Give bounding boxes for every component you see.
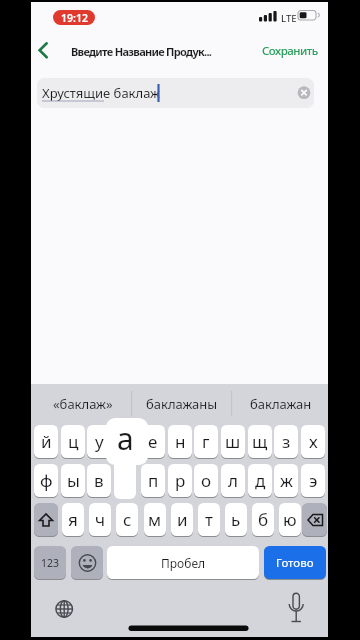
button[interactable]: «баклаж» bbox=[48, 391, 118, 416]
staticText: с bbox=[123, 508, 132, 531]
button[interactable]: в bbox=[87, 464, 111, 497]
staticText: р bbox=[175, 469, 186, 492]
staticText: и bbox=[177, 508, 188, 531]
button[interactable]: я bbox=[62, 503, 84, 536]
button[interactable]: ю bbox=[279, 503, 301, 536]
button[interactable]: с bbox=[116, 503, 138, 536]
button[interactable]: ш bbox=[221, 425, 245, 458]
staticText: ю bbox=[283, 508, 297, 531]
staticText: Готово bbox=[276, 555, 314, 571]
staticText: 123 bbox=[41, 556, 60, 570]
staticText: е bbox=[148, 430, 158, 453]
button[interactable] bbox=[71, 546, 103, 579]
staticText: н bbox=[175, 430, 186, 453]
staticText: ч bbox=[95, 508, 106, 531]
button[interactable]: о bbox=[194, 464, 218, 497]
staticText: у bbox=[95, 430, 104, 453]
button[interactable]: у bbox=[87, 425, 111, 458]
staticText: ф bbox=[40, 469, 53, 492]
staticText: о bbox=[201, 469, 212, 492]
staticText: з bbox=[282, 430, 291, 453]
staticText: ж bbox=[280, 469, 293, 492]
staticText: Сохранить bbox=[262, 43, 318, 59]
button[interactable] bbox=[34, 503, 58, 536]
button[interactable]: Пробел bbox=[107, 546, 259, 579]
button[interactable]: д bbox=[248, 464, 272, 497]
button[interactable] bbox=[284, 595, 309, 624]
button[interactable]: ь bbox=[225, 503, 247, 536]
staticText: я bbox=[68, 508, 78, 531]
staticText: г bbox=[202, 430, 210, 453]
button[interactable]: Готово bbox=[264, 546, 326, 579]
button[interactable]: ж bbox=[274, 464, 298, 497]
button[interactable]: 123 bbox=[34, 546, 66, 579]
staticText: Пробел bbox=[161, 555, 206, 571]
button[interactable]: б bbox=[252, 503, 274, 536]
staticText: 19:12 bbox=[61, 11, 88, 25]
button[interactable]: ч bbox=[89, 503, 111, 536]
button[interactable] bbox=[33, 38, 57, 64]
staticText: п bbox=[148, 469, 159, 492]
staticText: ш bbox=[225, 430, 241, 453]
staticText: а bbox=[117, 418, 134, 459]
button[interactable] bbox=[302, 503, 327, 536]
staticText: м bbox=[148, 508, 162, 531]
staticText: й bbox=[41, 430, 52, 453]
button[interactable]: х bbox=[301, 425, 325, 458]
staticText: Хрустящие баклаж bbox=[42, 84, 160, 102]
button[interactable]: е bbox=[141, 425, 165, 458]
staticText: баклажан bbox=[250, 395, 312, 413]
staticText: б bbox=[258, 508, 269, 531]
staticText: LTE bbox=[281, 12, 297, 25]
button[interactable]: л bbox=[221, 464, 245, 497]
button[interactable]: м bbox=[144, 503, 166, 536]
button[interactable]: н bbox=[168, 425, 192, 458]
staticText: т bbox=[205, 508, 213, 531]
staticText: ь bbox=[231, 508, 241, 531]
button[interactable]: э bbox=[301, 464, 325, 497]
staticText: ы bbox=[67, 469, 80, 492]
button[interactable]: ф bbox=[34, 464, 58, 497]
button[interactable]: з bbox=[274, 425, 298, 458]
button[interactable]: Хрустящие баклаж bbox=[37, 78, 314, 108]
button[interactable]: и bbox=[171, 503, 193, 536]
staticText: Введите Название Продук... bbox=[71, 44, 212, 59]
button[interactable]: п bbox=[141, 464, 165, 497]
staticText: щ bbox=[252, 430, 268, 453]
button[interactable]: ы bbox=[61, 464, 85, 497]
button[interactable]: т bbox=[198, 503, 220, 536]
button[interactable]: Сохранить bbox=[255, 41, 325, 61]
staticText: ц bbox=[68, 430, 79, 453]
button[interactable]: р bbox=[168, 464, 192, 497]
button[interactable]: баклажаны bbox=[146, 391, 218, 416]
button[interactable] bbox=[52, 597, 77, 622]
button[interactable]: 19:12 bbox=[53, 10, 95, 25]
staticText: э bbox=[309, 469, 318, 492]
button[interactable]: й bbox=[34, 425, 58, 458]
button[interactable]: ц bbox=[61, 425, 85, 458]
staticText: д bbox=[255, 469, 266, 492]
staticText: в bbox=[94, 469, 104, 492]
staticText: л bbox=[228, 469, 238, 492]
button[interactable] bbox=[106, 418, 148, 465]
button[interactable]: щ bbox=[248, 425, 272, 458]
staticText: баклажаны bbox=[146, 395, 218, 413]
button[interactable]: г bbox=[194, 425, 218, 458]
button[interactable] bbox=[295, 84, 313, 102]
staticText: х bbox=[309, 430, 318, 453]
staticText: «баклаж» bbox=[53, 395, 113, 413]
button[interactable]: баклажан bbox=[248, 391, 314, 416]
